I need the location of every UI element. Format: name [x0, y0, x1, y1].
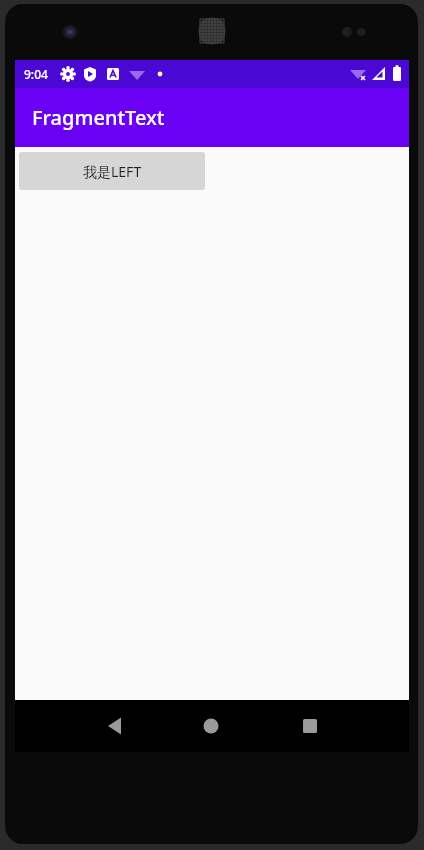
staticText: 9:04	[24, 66, 48, 82]
staticText: FragmentText	[32, 104, 165, 131]
button[interactable]: Recent apps	[288, 704, 332, 748]
button[interactable]: 我是LEFT	[19, 152, 205, 190]
staticText: 我是LEFT	[83, 162, 142, 181]
button[interactable]: Back	[93, 704, 137, 748]
button[interactable]: Home	[189, 704, 233, 748]
